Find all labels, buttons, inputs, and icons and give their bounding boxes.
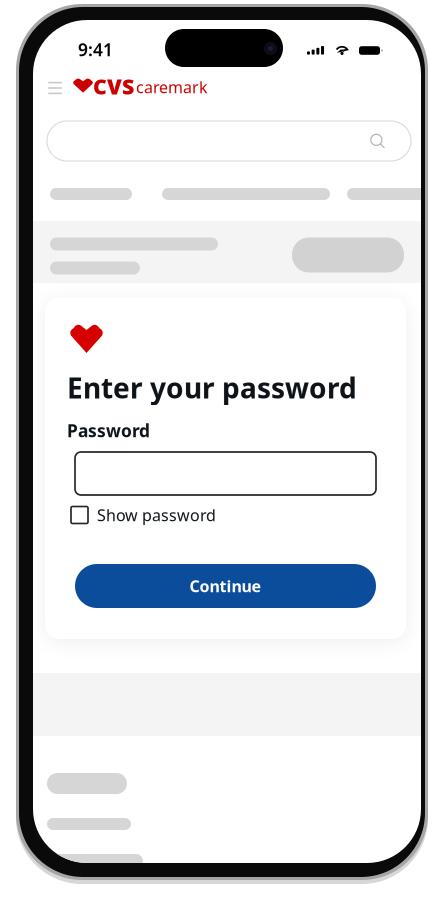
- staticText: 9:41: [78, 38, 113, 61]
- staticText: Continue: [189, 575, 261, 597]
- button[interactable]: Show password: [71, 505, 321, 525]
- staticText: caremark: [136, 76, 208, 98]
- staticText: Enter your password: [67, 369, 357, 406]
- button[interactable]: Continue: [75, 564, 376, 608]
- button[interactable]: Search: [47, 121, 411, 161]
- staticText: Password: [67, 419, 150, 442]
- staticText: CVS: [93, 72, 134, 100]
- staticText: Show password: [97, 504, 216, 526]
- button[interactable]: Menu: [42, 76, 68, 100]
